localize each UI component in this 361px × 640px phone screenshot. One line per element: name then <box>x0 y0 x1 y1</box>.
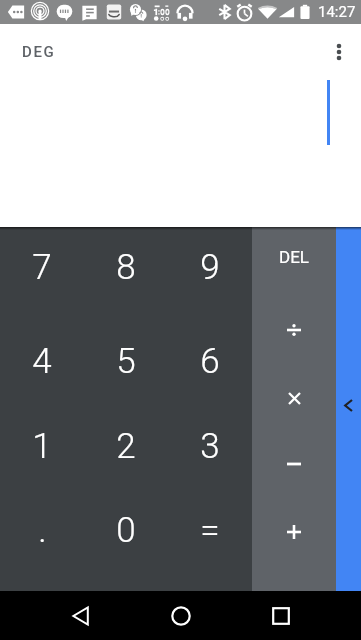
staticText: 6 <box>200 341 220 382</box>
staticText: 2 <box>116 426 136 467</box>
staticText: . <box>38 510 47 551</box>
staticText: 4 <box>32 341 52 382</box>
button[interactable]: Home <box>157 591 205 640</box>
staticText: 3 <box>200 426 220 467</box>
staticText: 0 <box>116 510 136 551</box>
button[interactable] <box>252 518 336 591</box>
button[interactable] <box>252 372 336 445</box>
button[interactable]: Back <box>56 591 104 640</box>
staticText: 9 <box>200 247 220 288</box>
button[interactable]: 4 <box>0 318 84 409</box>
button[interactable]: . <box>0 500 84 591</box>
staticText: 1 <box>32 426 52 467</box>
button[interactable]: 0 <box>84 500 168 591</box>
staticText: DEG <box>22 43 56 61</box>
button[interactable]: Open advanced pad <box>336 227 361 591</box>
button[interactable] <box>252 445 336 518</box>
button[interactable]: 1 <box>0 409 84 500</box>
button[interactable]: 6 <box>168 318 252 409</box>
button[interactable]: 7 <box>0 227 84 318</box>
button[interactable]: 8 <box>84 227 168 318</box>
button[interactable]: More options <box>316 24 361 79</box>
staticText: 5 <box>116 341 136 382</box>
staticText: 7 <box>32 247 52 288</box>
staticText: = <box>200 510 220 551</box>
button[interactable]: 2 <box>84 409 168 500</box>
button[interactable]: 9 <box>168 227 252 318</box>
staticText: DEL <box>279 247 309 267</box>
button[interactable]: 5 <box>84 318 168 409</box>
button[interactable]: 3 <box>168 409 252 500</box>
button[interactable]: = <box>168 500 252 591</box>
staticText: 14:27 <box>318 3 356 21</box>
button[interactable] <box>252 299 336 372</box>
staticText: 8 <box>116 247 136 288</box>
button[interactable]: DEL <box>252 227 336 299</box>
button[interactable]: Recents <box>257 591 305 640</box>
